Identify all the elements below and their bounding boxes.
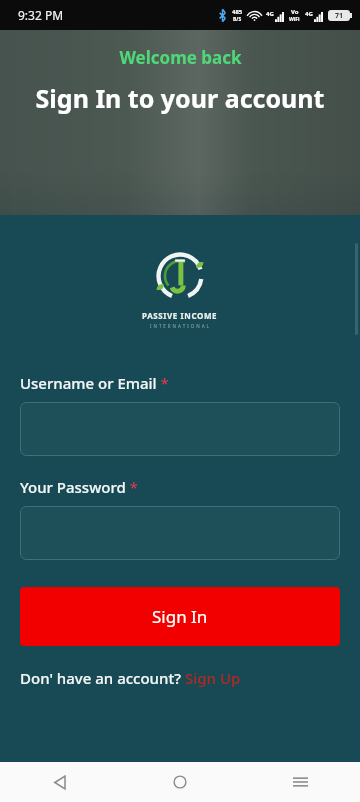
button[interactable]: Recent apps	[240, 762, 360, 802]
staticText: Sign In	[152, 605, 208, 628]
staticText: Sign In to your account	[24, 81, 336, 115]
staticText: I N T E R N A T I O N A L	[150, 323, 210, 329]
staticText: Welcome back	[119, 46, 242, 69]
staticText: B/S	[233, 16, 242, 23]
staticText: PASSIVE INCOME	[142, 310, 218, 321]
staticText: 71	[335, 11, 344, 21]
staticText: Sign Up	[185, 668, 241, 688]
staticText: Vo	[291, 8, 299, 16]
staticText: Don' have an account?	[20, 668, 185, 688]
staticText: 4G	[305, 10, 313, 18]
button[interactable]: Back	[0, 762, 120, 802]
button[interactable]	[20, 506, 340, 560]
staticText: 9:32 PM	[18, 7, 64, 23]
staticText: 485	[232, 8, 243, 16]
staticText: 4G	[266, 10, 274, 18]
staticText: WiFi	[289, 16, 300, 23]
button[interactable]: Sign Up	[185, 668, 241, 688]
button[interactable]	[20, 402, 340, 456]
button[interactable]: Home	[120, 762, 240, 802]
staticText: Your Password *	[20, 477, 138, 497]
button[interactable]: Sign In	[20, 587, 340, 646]
staticText: Username or Email *	[20, 373, 169, 393]
